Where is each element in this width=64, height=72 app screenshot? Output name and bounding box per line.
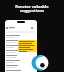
staticText: Receive valuable suggestions <box>0 4 64 14</box>
